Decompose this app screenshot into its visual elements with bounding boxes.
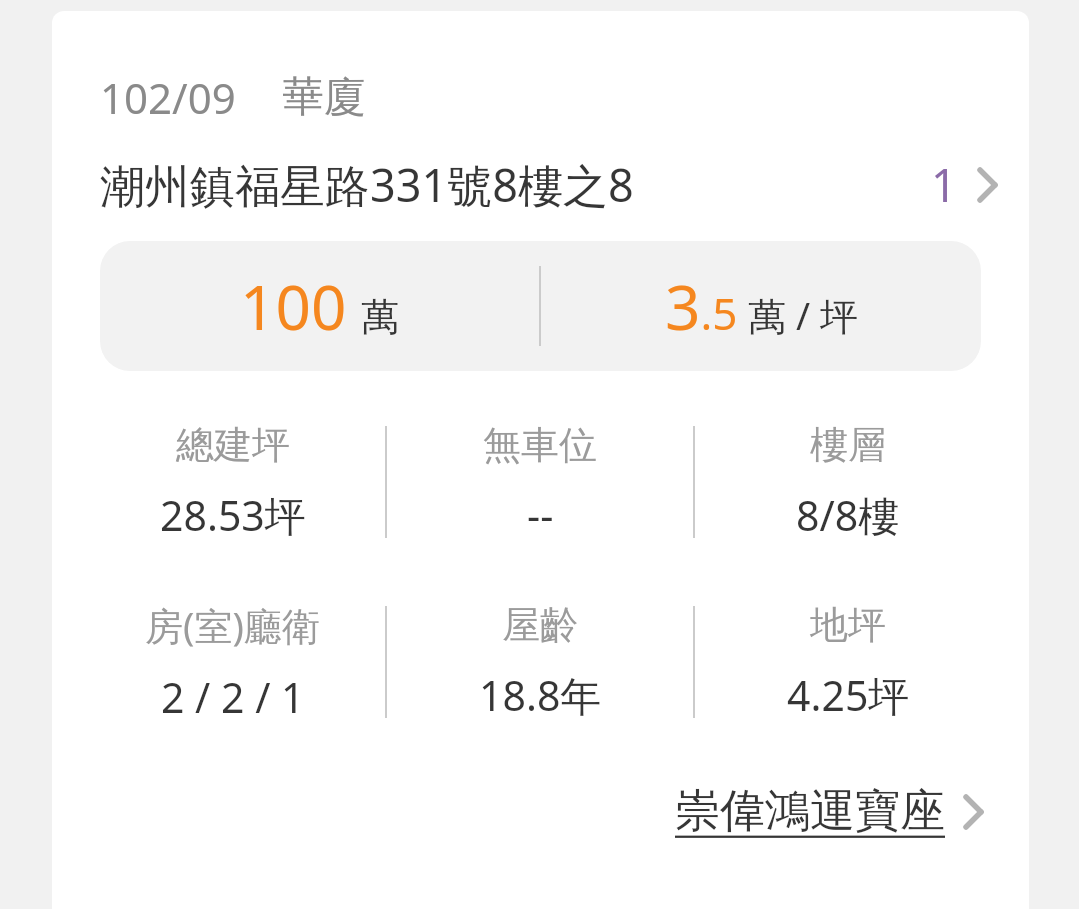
staticText: 18.8年 bbox=[479, 667, 602, 723]
other: 查看詳情 bbox=[963, 160, 1013, 210]
staticText: 1 bbox=[931, 154, 957, 215]
staticText: 房(室)廳衛 bbox=[145, 599, 320, 651]
staticText: 28.53坪 bbox=[160, 487, 306, 543]
staticText: 屋齡 bbox=[502, 601, 578, 649]
staticText: 8/8樓 bbox=[796, 487, 900, 543]
staticText: 樓層 bbox=[810, 421, 886, 469]
staticText: 地坪 bbox=[810, 601, 886, 649]
staticText: 崇偉鴻運寶座 bbox=[675, 783, 945, 840]
staticText: 萬 bbox=[361, 293, 399, 341]
button[interactable]: 崇偉鴻運寶座 bbox=[667, 775, 1007, 848]
staticText: 萬 / 坪 bbox=[748, 289, 858, 341]
staticText: 102/09 bbox=[100, 69, 236, 126]
staticText: 潮州鎮福星路331號8樓之8 bbox=[100, 154, 634, 215]
staticText: 2 / 2 / 1 bbox=[161, 669, 305, 725]
staticText: 100 bbox=[240, 264, 347, 348]
staticText: 4.25坪 bbox=[787, 667, 910, 723]
staticText: 總建坪 bbox=[176, 421, 290, 469]
staticText: 3.5 bbox=[665, 264, 738, 348]
button[interactable]: 潮州鎮福星路331號8樓之8 bbox=[52, 154, 1029, 215]
staticText: 無車位 bbox=[483, 421, 597, 469]
staticText: -- bbox=[527, 487, 554, 543]
staticText: 華廈 bbox=[282, 71, 366, 124]
